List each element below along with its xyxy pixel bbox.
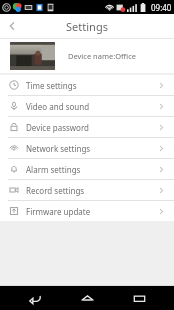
button[interactable]: Firmware update [0,201,174,221]
button[interactable]: Time settings [0,75,174,95]
staticText: Device name:Office [68,51,136,61]
button[interactable]: Back [0,14,24,38]
button[interactable]: Network settings [0,138,174,158]
button[interactable]: Alarm settings [0,159,174,179]
staticText: Firmware update [26,206,91,217]
staticText: Record settings [26,185,85,196]
button[interactable]: Back [18,286,52,310]
staticText: Alarm settings [26,164,81,175]
button[interactable]: Device name:Office [0,39,174,73]
button[interactable]: Device password [0,117,174,137]
button[interactable]: Video and sound [0,96,174,116]
staticText: Time settings [26,80,77,91]
button[interactable]: Record settings [0,180,174,200]
staticText: Network settings [26,143,91,154]
staticText: Device password [26,122,90,133]
staticText: Settings [66,19,108,34]
staticText: Video and sound [26,101,90,112]
button[interactable]: Home [70,286,104,310]
button[interactable]: Recent apps [122,286,156,310]
staticText: 09:40 [151,2,172,13]
